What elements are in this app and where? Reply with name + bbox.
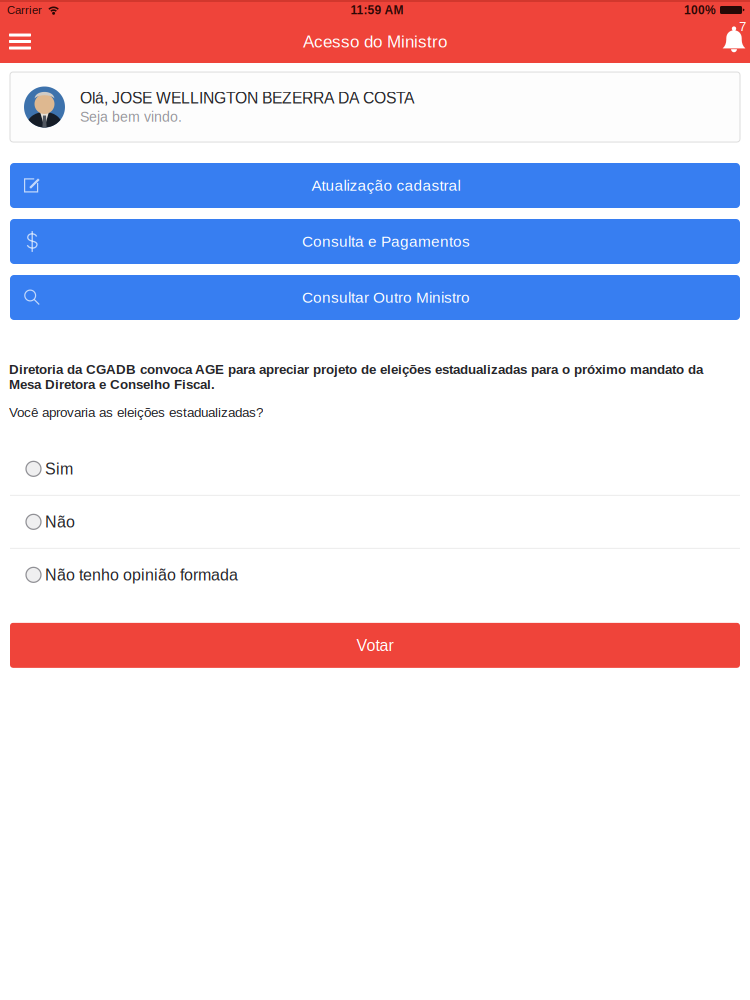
staticText: Sim [45,460,73,478]
staticText: Consulta e Pagamentos [302,233,470,250]
button[interactable]: Consulta e Pagamentos [10,219,740,264]
staticText: Diretoria da CGADB convoca AGE para apre… [9,362,703,377]
button[interactable]: Não tenho opinião formada [10,549,740,601]
staticText: Não [45,513,75,531]
staticText: Atualização cadastral [311,177,460,194]
button[interactable]: Notificações [714,20,750,63]
button[interactable]: Olá, JOSE WELLINGTON BEZERRA DA COSTA [10,72,740,142]
staticText: Olá, JOSE WELLINGTON BEZERRA DA COSTA [80,89,414,107]
staticText: 7 [739,19,746,34]
button[interactable]: Menu [0,20,42,62]
staticText: Consultar Outro Ministro [302,289,470,306]
staticText: Carrier [7,4,42,16]
staticText: Você aprovaria as eleições estadualizada… [9,405,263,420]
button[interactable]: Não [10,496,740,548]
staticText: Não tenho opinião formada [45,566,238,584]
staticText: 100% [684,3,716,17]
button[interactable]: Votar [10,623,740,668]
staticText: Seja bem vindo. [80,109,182,125]
staticText: Mesa Diretora e Conselho Fiscal. [9,377,215,392]
button[interactable]: Consultar Outro Ministro [10,275,740,320]
button[interactable]: Atualização cadastral [10,163,740,208]
staticText: 11:59 AM [350,3,403,17]
staticText: Acesso do Ministro [303,32,447,51]
staticText: Votar [356,636,393,654]
button[interactable]: Sim [10,443,740,495]
